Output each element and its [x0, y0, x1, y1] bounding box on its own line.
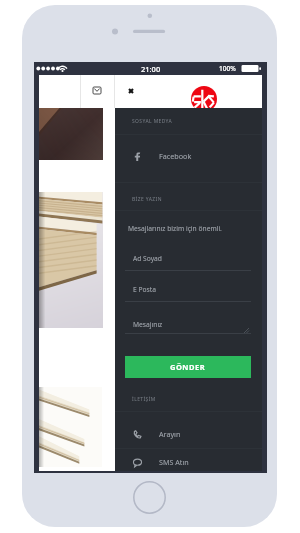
- staticText: SOSYAL MEDYA: [132, 118, 173, 125]
- button[interactable]: E-posta: [80, 75, 114, 108]
- staticText: Facebook: [159, 151, 192, 161]
- button[interactable]: Facebook: [115, 147, 262, 167]
- button[interactable]: [39, 108, 103, 160]
- staticText: E Posta: [133, 285, 156, 294]
- staticText: SMS Atın: [159, 457, 189, 467]
- button[interactable]: [39, 192, 103, 328]
- button[interactable]: SMS Atın: [115, 453, 262, 473]
- staticText: Arayın: [159, 429, 181, 439]
- button[interactable]: Ana ekran: [133, 481, 166, 514]
- staticText: Ad Soyad: [133, 254, 162, 263]
- button[interactable]: [39, 387, 102, 467]
- button[interactable]: GÖNDER: [125, 356, 251, 378]
- button[interactable]: Arayın: [115, 425, 262, 445]
- staticText: Mesajınız: [133, 320, 163, 329]
- staticText: 21:00: [141, 64, 161, 74]
- staticText: 100%: [219, 64, 236, 73]
- button[interactable]: Kapat: [114, 75, 148, 108]
- staticText: İLETİŞİM: [132, 396, 156, 403]
- button[interactable]: Logo: [191, 86, 217, 112]
- staticText: BİZE YAZIN: [132, 196, 162, 203]
- staticText: GÖNDER: [170, 362, 206, 372]
- staticText: Mesajlarınız bizim için önemli.: [128, 224, 222, 233]
